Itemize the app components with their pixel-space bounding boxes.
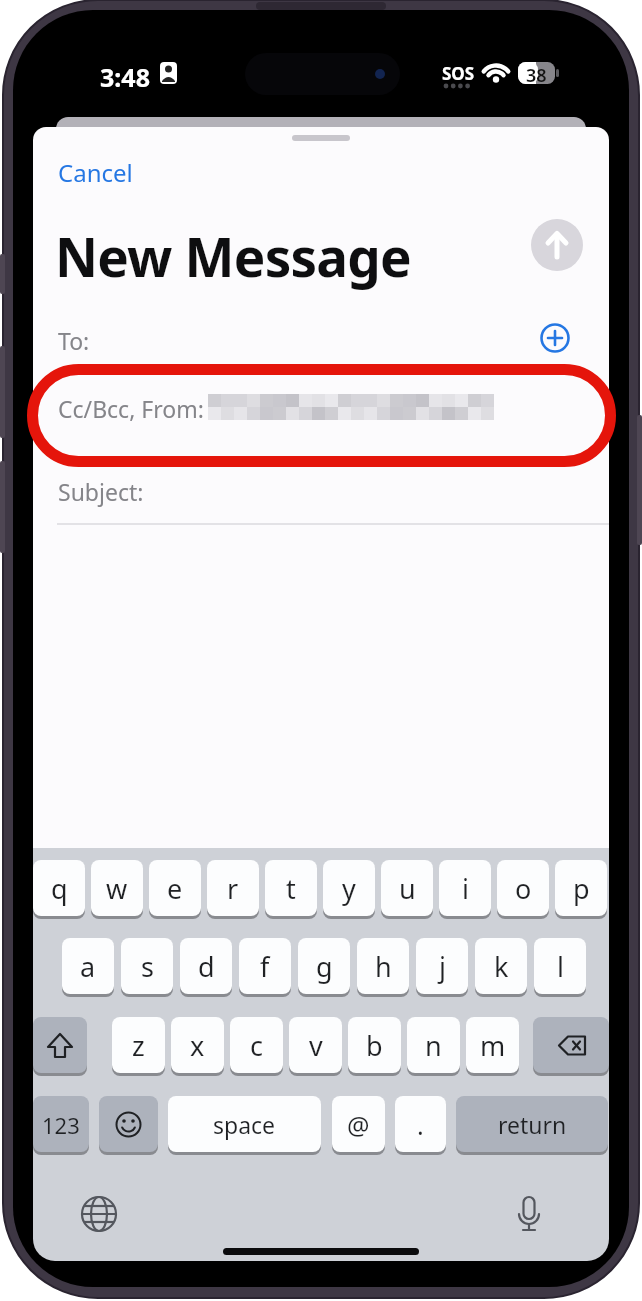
staticText: h <box>375 948 392 985</box>
button[interactable] <box>533 1017 609 1074</box>
staticText: j <box>439 948 446 985</box>
button[interactable]: q <box>33 860 85 917</box>
staticText: r <box>227 870 239 907</box>
button[interactable]: space <box>168 1096 321 1153</box>
staticText: b <box>366 1027 383 1064</box>
staticText: c <box>250 1027 263 1064</box>
button[interactable]: f <box>239 938 291 995</box>
button[interactable]: c <box>230 1017 283 1074</box>
staticText: y <box>342 870 356 907</box>
staticText: p <box>573 870 590 907</box>
staticText: t <box>286 870 296 907</box>
staticText: return <box>498 1109 567 1140</box>
staticText: Subject: <box>58 476 144 507</box>
button[interactable] <box>531 219 583 271</box>
button[interactable]: x <box>171 1017 224 1074</box>
staticText: o <box>515 870 532 907</box>
button[interactable]: l <box>534 938 586 995</box>
staticText: e <box>167 870 183 907</box>
button[interactable]: To: <box>33 310 609 365</box>
staticText: space <box>213 1109 276 1140</box>
button[interactable]: h <box>357 938 409 995</box>
button[interactable]: @ <box>332 1096 385 1153</box>
button[interactable]: Subject: <box>33 452 609 523</box>
button[interactable]: t <box>265 860 317 917</box>
staticText: . <box>417 1108 424 1142</box>
button[interactable]: m <box>466 1017 519 1074</box>
staticText: k <box>494 948 509 985</box>
staticText: 38 <box>526 63 547 88</box>
staticText: Cancel <box>58 156 133 189</box>
button[interactable]: y <box>323 860 375 917</box>
staticText: a <box>80 948 96 985</box>
button[interactable]: Cancel <box>58 156 133 189</box>
button[interactable]: n <box>407 1017 460 1074</box>
staticText: SOS <box>442 62 475 85</box>
button[interactable]: i <box>439 860 491 917</box>
button[interactable] <box>33 1017 87 1074</box>
button[interactable]: p <box>555 860 607 917</box>
staticText: To: <box>58 325 90 356</box>
staticText: q <box>51 870 68 907</box>
button[interactable]: j <box>416 938 468 995</box>
staticText: n <box>425 1027 442 1064</box>
button[interactable]: a <box>62 938 114 995</box>
button[interactable]: s <box>121 938 173 995</box>
staticText: 123 <box>42 1110 80 1140</box>
button[interactable]: v <box>289 1017 342 1074</box>
button[interactable]: Cc/Bcc, From: <box>33 375 609 440</box>
button[interactable]: return <box>456 1096 608 1153</box>
button[interactable]: e <box>149 860 201 917</box>
button[interactable]: . <box>395 1096 446 1153</box>
staticText: 3:48 <box>100 60 150 94</box>
staticText: l <box>557 948 564 985</box>
staticText: x <box>190 1027 205 1064</box>
staticText: New Message <box>55 220 411 292</box>
staticText: z <box>132 1027 145 1064</box>
staticText: f <box>260 948 270 985</box>
button[interactable]: z <box>112 1017 165 1074</box>
button[interactable] <box>99 1096 158 1153</box>
staticText: Cc/Bcc, From: <box>58 393 204 424</box>
staticText: v <box>309 1027 323 1064</box>
staticText: d <box>198 948 215 985</box>
button[interactable] <box>538 321 572 355</box>
button[interactable]: b <box>348 1017 401 1074</box>
button[interactable]: r <box>207 860 259 917</box>
staticText: i <box>462 870 469 907</box>
staticText: s <box>141 948 154 985</box>
staticText: g <box>316 948 333 985</box>
staticText: m <box>480 1027 506 1064</box>
button[interactable]: k <box>475 938 527 995</box>
button[interactable]: o <box>497 860 549 917</box>
button[interactable]: w <box>91 860 143 917</box>
button[interactable]: u <box>381 860 433 917</box>
button[interactable]: 123 <box>33 1096 89 1153</box>
staticText: w <box>106 870 128 907</box>
staticText: @ <box>347 1108 370 1142</box>
staticText: u <box>399 870 416 907</box>
button[interactable]: d <box>180 938 232 995</box>
button[interactable]: g <box>298 938 350 995</box>
